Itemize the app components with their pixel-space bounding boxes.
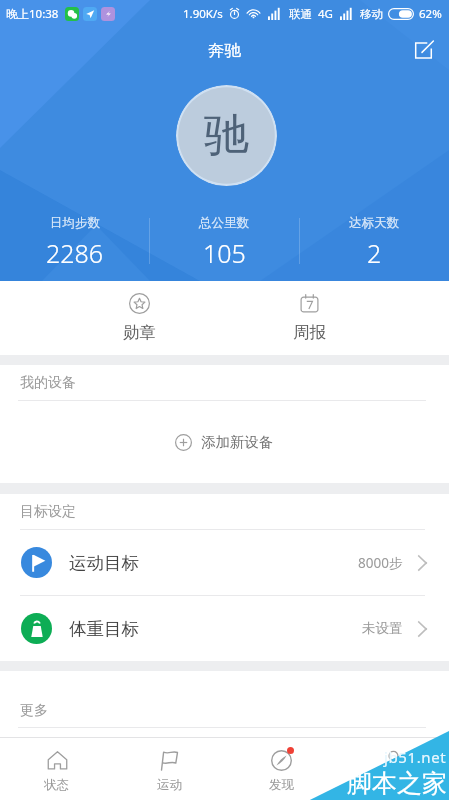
button[interactable]: 我的 bbox=[337, 738, 449, 800]
staticText: 2286 bbox=[46, 236, 104, 265]
staticText: 运动 bbox=[157, 777, 182, 793]
staticText: 发现 bbox=[269, 777, 294, 793]
staticText: 脚本之家 bbox=[347, 768, 447, 799]
staticText: 105 bbox=[203, 236, 246, 265]
staticText: 勋章 bbox=[123, 322, 156, 343]
button[interactable]: Edit profile bbox=[404, 31, 442, 69]
staticText: 晚上10:38 bbox=[6, 6, 59, 22]
staticText: 2 bbox=[367, 236, 382, 265]
staticText: 总公里数 bbox=[199, 215, 249, 231]
staticText: 我的 bbox=[381, 777, 406, 793]
staticText: 奔驰 bbox=[208, 40, 241, 61]
staticText: 添加新设备 bbox=[201, 433, 274, 451]
staticText: 体重目标 bbox=[69, 618, 139, 640]
staticText: 状态 bbox=[44, 777, 69, 793]
staticText: 未设置 bbox=[362, 620, 403, 637]
staticText: 驰 bbox=[204, 107, 249, 164]
button[interactable]: 发现 bbox=[225, 738, 337, 800]
button[interactable]: 达标天数 bbox=[299, 215, 449, 265]
button[interactable]: 状态 bbox=[0, 738, 113, 800]
staticText: 移动 bbox=[360, 7, 383, 21]
staticText: 4G bbox=[318, 6, 333, 22]
button[interactable]: 日均步数 bbox=[0, 215, 149, 265]
staticText: 联通 bbox=[289, 7, 312, 21]
button[interactable]: 周报 bbox=[224, 281, 395, 355]
button[interactable]: 运动 bbox=[113, 738, 225, 800]
button[interactable]: 运动目标 bbox=[0, 530, 449, 595]
button[interactable]: 总公里数 bbox=[149, 215, 299, 265]
button[interactable]: Profile avatar bbox=[176, 85, 277, 186]
staticText: 日均步数 bbox=[50, 215, 100, 231]
button[interactable]: 添加新设备 bbox=[0, 401, 449, 483]
staticText: 62% bbox=[419, 6, 442, 22]
staticText: 更多 bbox=[20, 702, 48, 720]
staticText: 达标天数 bbox=[349, 215, 399, 231]
staticText: 目标设定 bbox=[20, 503, 76, 521]
staticText: 我的设备 bbox=[20, 374, 76, 392]
button[interactable]: 勋章 bbox=[54, 281, 224, 355]
staticText: 运动目标 bbox=[69, 552, 139, 574]
staticText: jb51.net bbox=[384, 747, 447, 767]
staticText: 1.90K/s bbox=[183, 6, 223, 22]
staticText: 周报 bbox=[293, 322, 326, 343]
button[interactable]: 体重目标 bbox=[0, 596, 449, 661]
staticText: 8000步 bbox=[358, 554, 403, 572]
